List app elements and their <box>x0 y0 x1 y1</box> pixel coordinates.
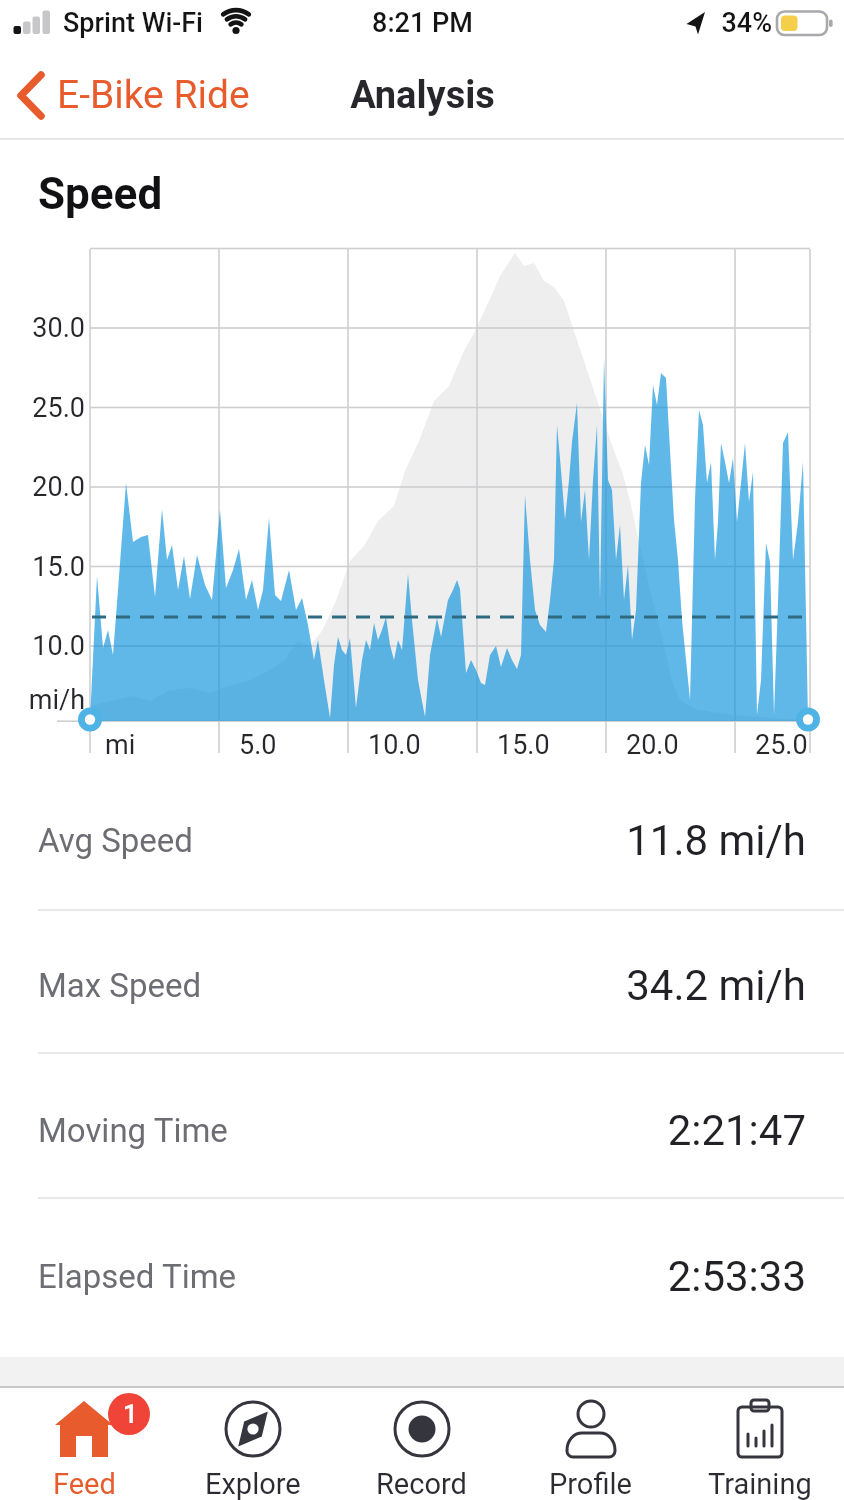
staticText: 2:21:47 <box>667 1106 806 1155</box>
staticText: 1 <box>123 1399 138 1429</box>
staticText: 20.0 <box>32 471 85 503</box>
staticText: Max Speed <box>38 966 202 1005</box>
staticText: mi/h <box>28 684 85 716</box>
button[interactable]: E-Bike Ride <box>6 62 266 128</box>
staticText: Training <box>708 1467 812 1500</box>
staticText: Elapsed Time <box>38 1257 237 1296</box>
staticText: 34% <box>721 7 772 39</box>
staticText: Avg Speed <box>38 821 193 860</box>
staticText: Profile <box>549 1467 632 1500</box>
staticText: 20.0 <box>626 729 679 761</box>
staticText: 5.0 <box>239 729 277 761</box>
button[interactable]: Explore <box>168 1388 337 1500</box>
staticText: 11.8 mi/h <box>626 816 806 865</box>
staticText: mi <box>105 729 136 761</box>
staticText: 25.0 <box>755 729 808 761</box>
staticText: Analysis <box>350 73 495 118</box>
staticText: 34.2 mi/h <box>626 961 806 1010</box>
staticText: 15.0 <box>32 551 85 583</box>
staticText: Explore <box>205 1467 301 1500</box>
button[interactable]: Training <box>675 1388 844 1500</box>
staticText: Feed <box>53 1467 116 1500</box>
staticText: 15.0 <box>497 729 550 761</box>
staticText: 10.0 <box>368 729 421 761</box>
staticText: Moving Time <box>38 1111 228 1150</box>
button[interactable]: Feed <box>0 1388 168 1500</box>
staticText: 2:53:33 <box>667 1252 806 1301</box>
staticText: Record <box>376 1467 467 1500</box>
staticText: E-Bike Ride <box>57 72 250 118</box>
staticText: 25.0 <box>32 392 85 424</box>
staticText: 8:21 PM <box>372 7 473 39</box>
staticText: Speed <box>38 168 163 220</box>
button[interactable]: Record <box>337 1388 506 1500</box>
button[interactable]: Profile <box>506 1388 675 1500</box>
staticText: Sprint Wi-Fi <box>63 7 203 39</box>
staticText: 30.0 <box>32 312 85 344</box>
staticText: 10.0 <box>32 630 85 662</box>
